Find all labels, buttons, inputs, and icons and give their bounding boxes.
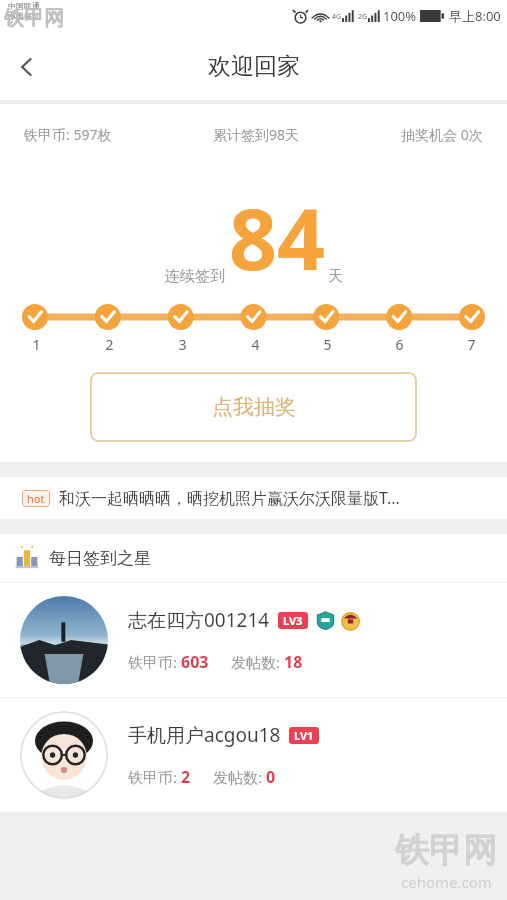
staticText: 2G — [358, 12, 368, 22]
staticText: 发帖数: — [231, 652, 284, 672]
staticText: 累计签到98天 — [213, 125, 300, 144]
staticText: 抽奖机会 0次 — [401, 125, 483, 144]
staticText: 4 — [251, 335, 260, 354]
staticText: 每日签到之星 — [49, 548, 151, 569]
staticText: 2 — [105, 335, 114, 354]
staticText: cehome.com — [401, 872, 492, 892]
staticText: 天 — [328, 267, 343, 286]
staticText: 志在四方001214 — [128, 607, 270, 633]
staticText: LV1 — [294, 728, 314, 743]
staticText: 手机用户acgou18 — [128, 722, 281, 748]
button[interactable]: 点我抽奖 — [90, 372, 417, 442]
staticText: 18 — [284, 651, 303, 673]
staticText: 连续签到 — [165, 267, 225, 286]
staticText: 3 — [178, 335, 187, 354]
staticText: 84 — [229, 180, 326, 294]
button[interactable]: hot — [0, 477, 507, 519]
staticText: 中国联通 — [8, 1, 40, 11]
staticText: 1 — [32, 335, 41, 354]
staticText: 早上8:00 — [449, 7, 501, 25]
staticText: 7 — [467, 335, 476, 354]
staticText: 2 — [181, 766, 191, 788]
staticText: 5 — [323, 335, 332, 354]
button[interactable]: 手机用户acgou18 — [0, 698, 507, 812]
staticText: 中国移动 — [8, 11, 40, 21]
staticText: 6 — [395, 335, 404, 354]
staticText: 603 — [181, 651, 209, 673]
staticText: 铁甲币: — [128, 652, 181, 672]
staticText: 4G — [332, 12, 342, 22]
staticText: 铁甲币: 597枚 — [24, 125, 112, 144]
button[interactable]: 志在四方001214 — [0, 583, 507, 697]
staticText: LV3 — [283, 613, 303, 628]
staticText: 0 — [266, 766, 276, 788]
staticText: 100% — [383, 7, 417, 25]
staticText: 铁甲币: — [128, 767, 181, 787]
staticText: hot — [27, 491, 45, 506]
staticText: 和沃一起晒晒晒，晒挖机照片赢沃尔沃限量版T... — [59, 487, 400, 509]
staticText: 点我抽奖 — [212, 394, 296, 420]
button[interactable]: Back — [0, 40, 54, 94]
staticText: 发帖数: — [213, 767, 266, 787]
staticText: 欢迎回家 — [208, 52, 300, 81]
staticText: 铁甲网 — [4, 6, 64, 31]
staticText: 铁甲网 — [395, 829, 497, 872]
